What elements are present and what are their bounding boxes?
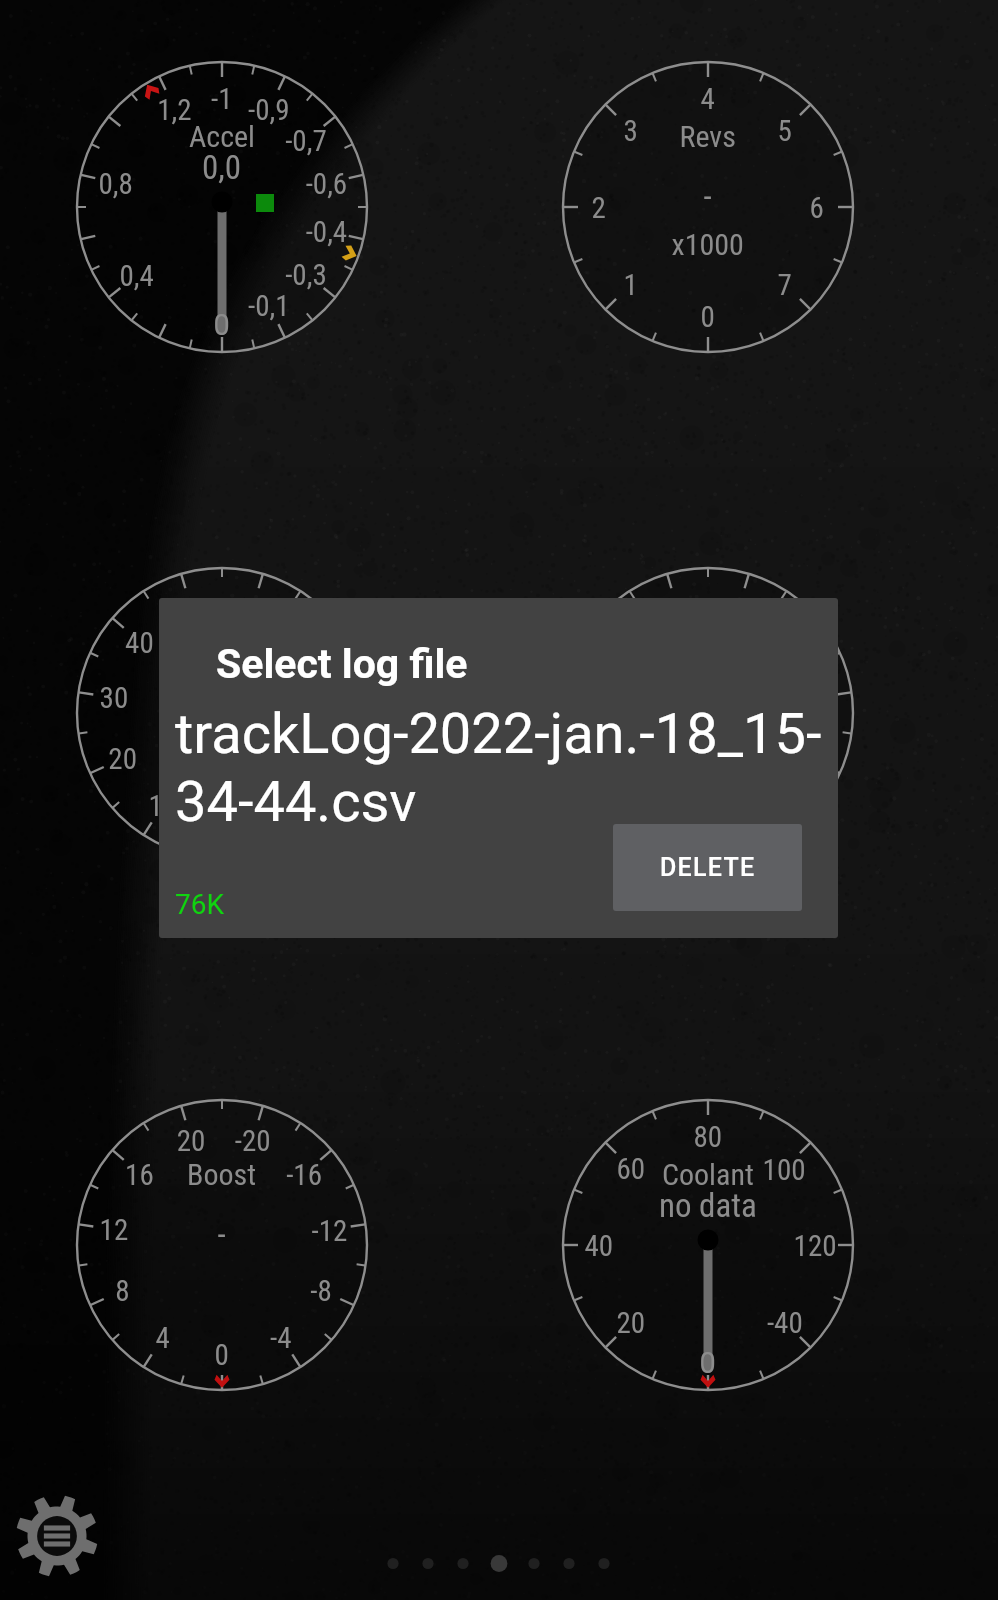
staticText: 76K: [175, 888, 225, 921]
staticText: DELETE: [660, 853, 756, 882]
button[interactable]: Page 3: [448, 1548, 479, 1579]
staticText: trackLog-2022-jan.-18_15- 34-44.csv: [175, 701, 822, 835]
button[interactable]: Page 1: [378, 1548, 409, 1579]
button[interactable]: Page 7: [589, 1548, 620, 1579]
button[interactable]: Page 2: [413, 1548, 444, 1579]
button[interactable]: Speed gauge: [77, 568, 367, 858]
button[interactable]: Page 5: [519, 1548, 550, 1579]
button[interactable]: Select log file: [159, 598, 838, 938]
button[interactable]: DELETE: [613, 824, 802, 911]
button[interactable]: Engine load gauge: [563, 568, 853, 858]
button[interactable]: Settings: [14, 1493, 100, 1579]
button[interactable]: Page 6: [554, 1548, 585, 1579]
button[interactable]: Accel gauge: [77, 62, 367, 352]
staticText: Select log file: [216, 640, 468, 688]
button[interactable]: Revs gauge: [563, 62, 853, 352]
button[interactable]: Page 4: [484, 1548, 515, 1579]
button[interactable]: Coolant gauge: [563, 1100, 853, 1390]
button[interactable]: Boost gauge: [77, 1100, 367, 1390]
